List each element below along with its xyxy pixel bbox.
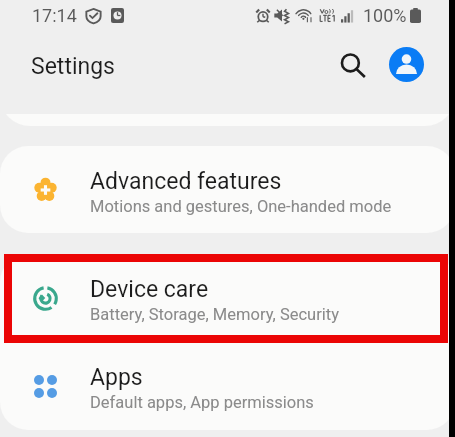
staticText: Device care <box>90 276 209 303</box>
button[interactable]: Advanced features <box>0 146 455 233</box>
staticText: 17:14 <box>32 5 77 26</box>
staticText: Settings <box>31 53 115 80</box>
button[interactable]: Search <box>331 44 374 87</box>
button[interactable]: Account <box>385 43 427 85</box>
staticText: Advanced features <box>90 168 282 195</box>
staticText: Default apps, App permissions <box>90 393 314 412</box>
button[interactable]: Device care <box>0 254 455 342</box>
staticText: Battery, Storage, Memory, Security <box>90 305 340 324</box>
staticText: 100% <box>363 5 407 26</box>
staticText: Motions and gestures, One-handed mode <box>90 197 392 216</box>
button[interactable]: Apps <box>0 342 455 430</box>
staticText: Apps <box>90 364 143 391</box>
